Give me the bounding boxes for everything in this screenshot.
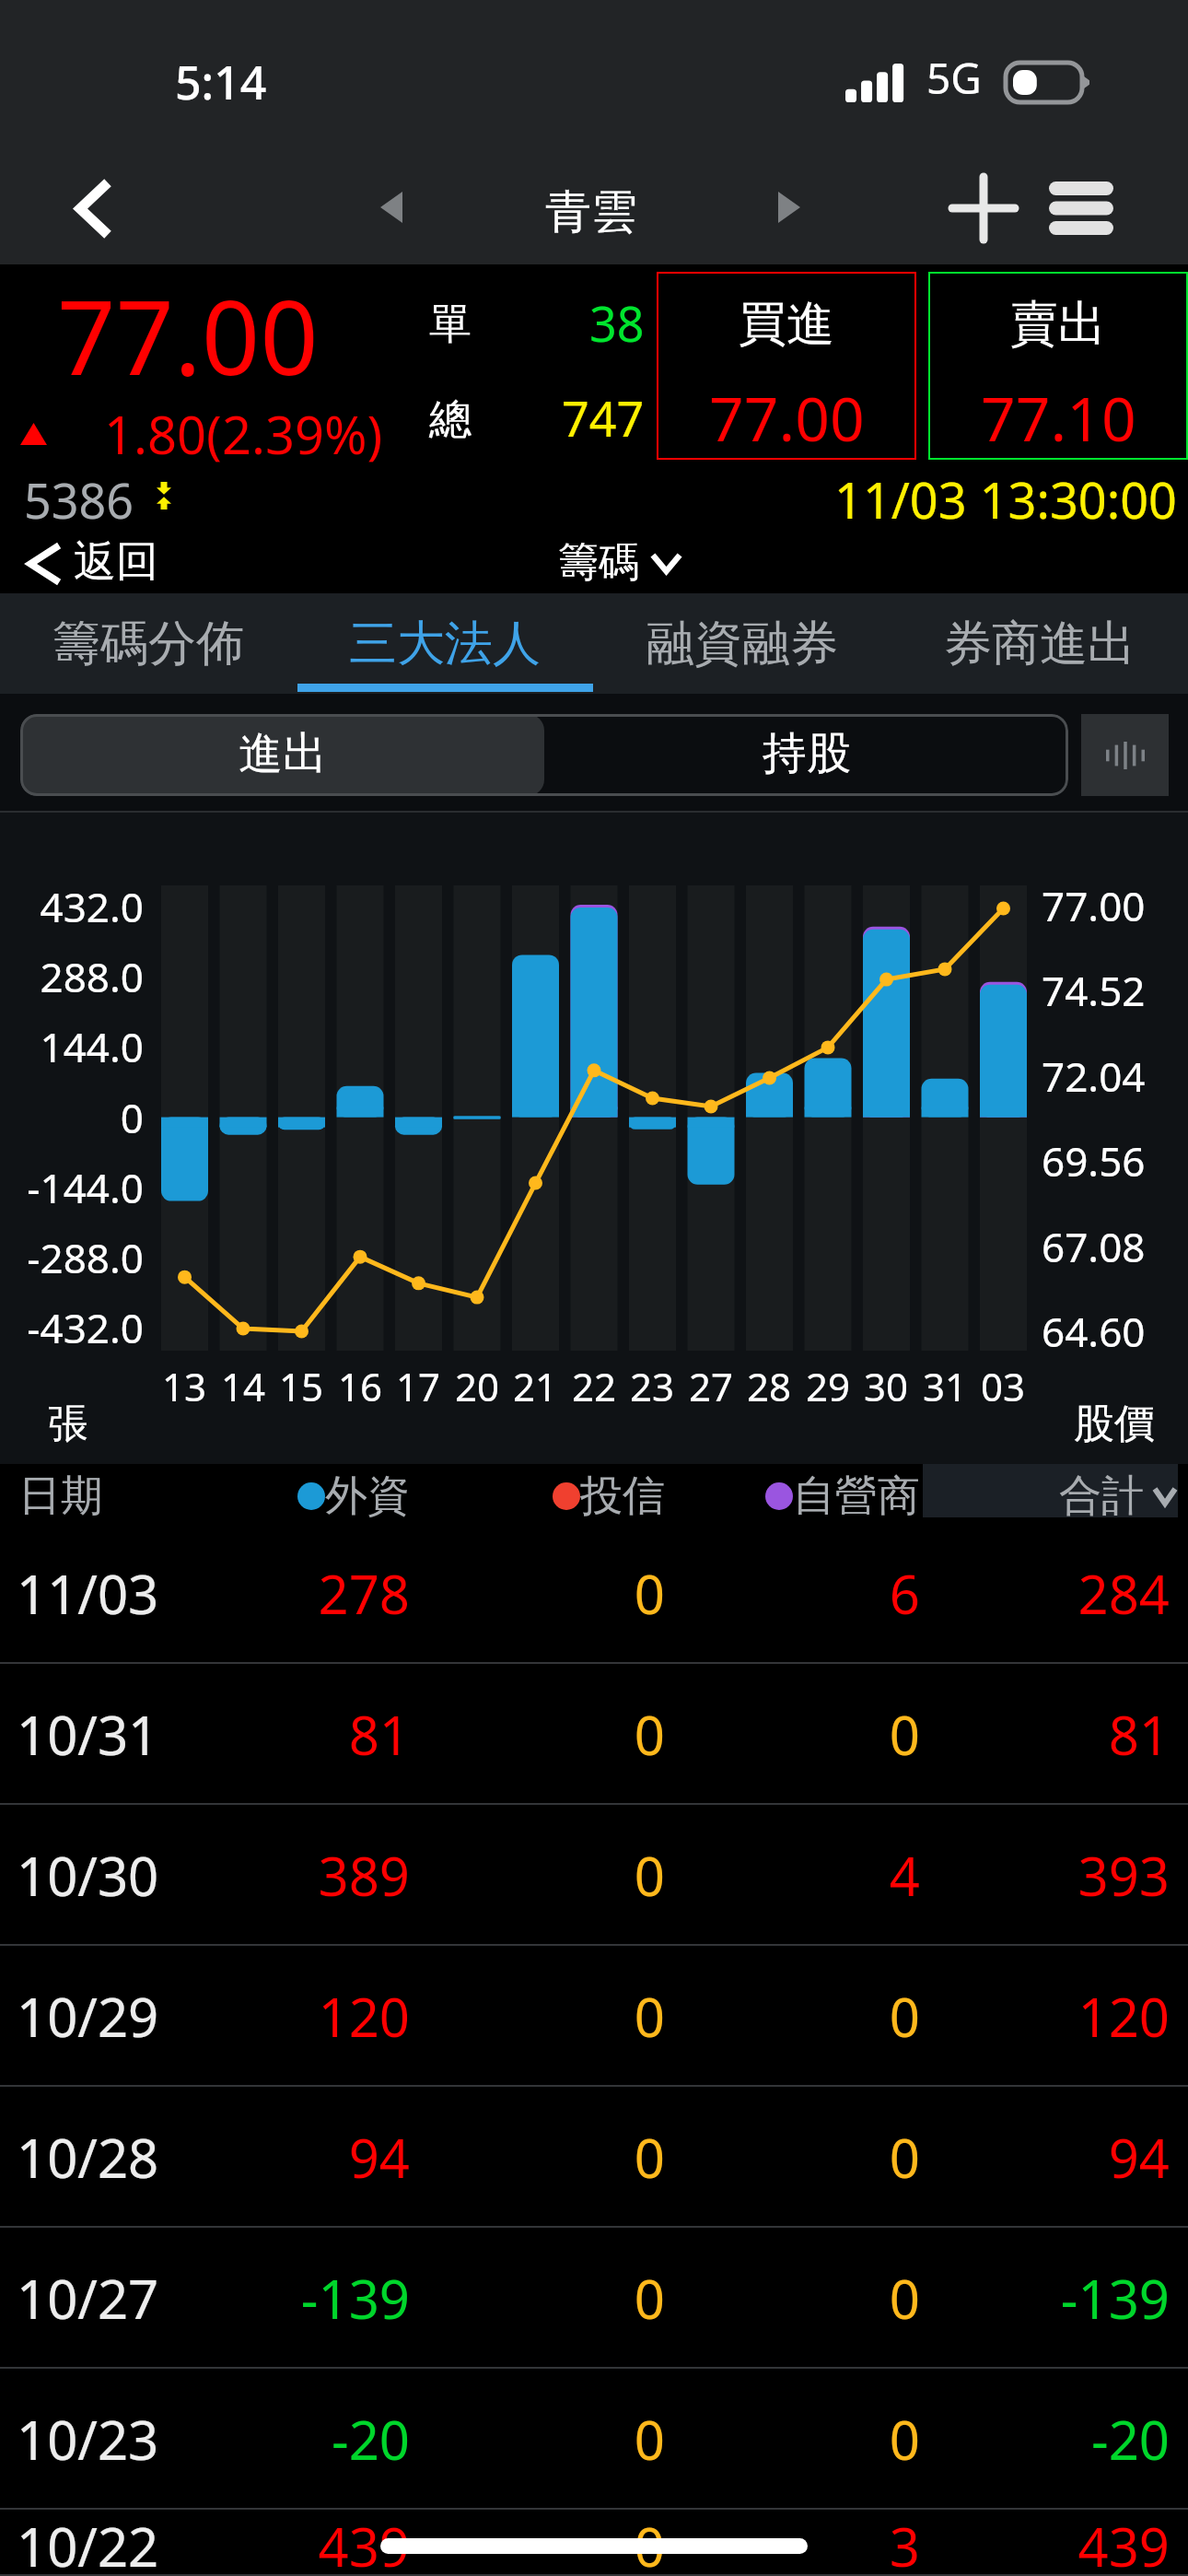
staticText: 77.00 [1042,878,1188,933]
staticText: 總 [429,393,472,447]
staticText: -288.0 [0,1230,144,1285]
staticText: 31 [923,1360,968,1412]
staticText: 0 [665,2121,920,2194]
button[interactable]: Previous stock [357,173,425,241]
staticText: 單 [429,298,472,351]
staticText: 6 [665,1557,920,1630]
button[interactable]: 三大法人 [297,593,593,694]
button[interactable]: Chart options [1081,714,1169,796]
staticText: 10/30 [17,1839,207,1912]
staticText: 0 [410,2510,665,2576]
staticText: 94 [920,2121,1170,2194]
button[interactable]: 合計 [923,1464,1178,1517]
staticText: -20 [920,2403,1170,2476]
button[interactable]: 10/28 [0,2087,1188,2228]
staticText: 5:14 [175,51,267,113]
staticText: 合計 [1059,1469,1144,1523]
staticText: 三大法人 [349,614,541,674]
button[interactable]: 10/23 [0,2369,1188,2510]
staticText: 5386 [24,467,134,533]
staticText: 28 [747,1360,792,1412]
button[interactable]: 券商進出 [891,593,1188,694]
staticText: 81 [920,1698,1170,1771]
button[interactable]: Add [938,162,1030,254]
button[interactable]: 返回 [28,537,158,591]
button[interactable]: 籌碼 [558,539,681,590]
staticText: 144.0 [0,1019,144,1074]
staticText: 1.80(2.39%) [104,399,383,469]
staticText: 股價 [1074,1399,1155,1449]
staticText: -20 [207,2403,410,2476]
staticText: 23 [630,1360,675,1412]
button[interactable]: 11/03 [0,1523,1188,1664]
staticText: 439 [920,2510,1170,2576]
staticText: 籌碼分佈 [52,614,244,674]
button[interactable]: 買進 [657,272,916,460]
staticText: 日期 [18,1469,103,1523]
staticText: 747 [562,385,645,440]
button[interactable]: 10/22 [0,2510,1188,2576]
staticText: 投信 [580,1469,665,1523]
staticText: 30 [864,1360,909,1412]
staticText: 432.0 [0,879,144,934]
button[interactable]: 籌碼分佈 [0,593,297,694]
button[interactable]: 賣出 [928,272,1188,460]
staticText: 15 [279,1360,324,1412]
staticText: 5G [926,49,982,107]
staticText: 38 [589,290,645,345]
staticText: 03 [981,1360,1026,1412]
staticText: 120 [207,1980,410,2053]
staticText: 21 [513,1360,558,1412]
staticText: 94 [207,2121,410,2194]
staticText: 0 [410,1557,665,1630]
staticText: 0 [410,1980,665,2053]
button[interactable]: 10/31 [0,1664,1188,1805]
staticText: 融資融券 [646,614,838,674]
button[interactable]: 10/27 [0,2228,1188,2369]
staticText: 0 [410,1698,665,1771]
staticText: 77.00 [709,376,865,459]
staticText: 0 [410,2403,665,2476]
staticText: 0 [665,1980,920,2053]
staticText: 賣出 [1010,294,1106,355]
button[interactable]: Menu [1035,162,1127,254]
staticText: 0 [665,2262,920,2335]
staticText: -139 [920,2262,1170,2335]
staticText: 10/27 [17,2262,207,2335]
staticText: 籌碼 [558,537,639,588]
staticText: 10/22 [17,2510,207,2576]
staticText: 持股 [763,726,851,781]
staticText: 11/03 [17,1557,207,1630]
staticText: 284 [920,1557,1170,1630]
staticText: 0 [665,1698,920,1771]
button[interactable]: 持股 [544,714,1068,796]
staticText: 3 [665,2510,920,2576]
staticText: 青雲 [545,183,637,241]
staticText: 10/29 [17,1980,207,2053]
button[interactable]: 10/29 [0,1946,1188,2087]
staticText: 10/23 [17,2403,207,2476]
staticText: 0 [410,1839,665,1912]
staticText: 券商進出 [944,614,1136,674]
staticText: 11/03 13:30:00 [834,465,1177,533]
button[interactable]: Next stock [755,173,823,241]
button[interactable]: 10/30 [0,1805,1188,1946]
staticText: 288.0 [0,949,144,1004]
staticText: 4 [665,1839,920,1912]
staticText: 81 [207,1698,410,1771]
button[interactable]: 融資融券 [593,593,891,694]
staticText: 20 [455,1360,500,1412]
staticText: -139 [207,2262,410,2335]
staticText: 74.52 [1042,963,1188,1018]
staticText: 返回 [74,535,158,589]
staticText: -144.0 [0,1160,144,1215]
staticText: 17 [396,1360,441,1412]
staticText: 0 [410,2262,665,2335]
staticText: -432.0 [0,1300,144,1355]
staticText: 0 [665,2403,920,2476]
staticText: 77.00 [57,265,319,404]
staticText: 外資 [325,1469,410,1523]
button[interactable]: Back [46,162,138,254]
button[interactable]: 進出 [20,714,544,796]
staticText: 29 [806,1360,851,1412]
